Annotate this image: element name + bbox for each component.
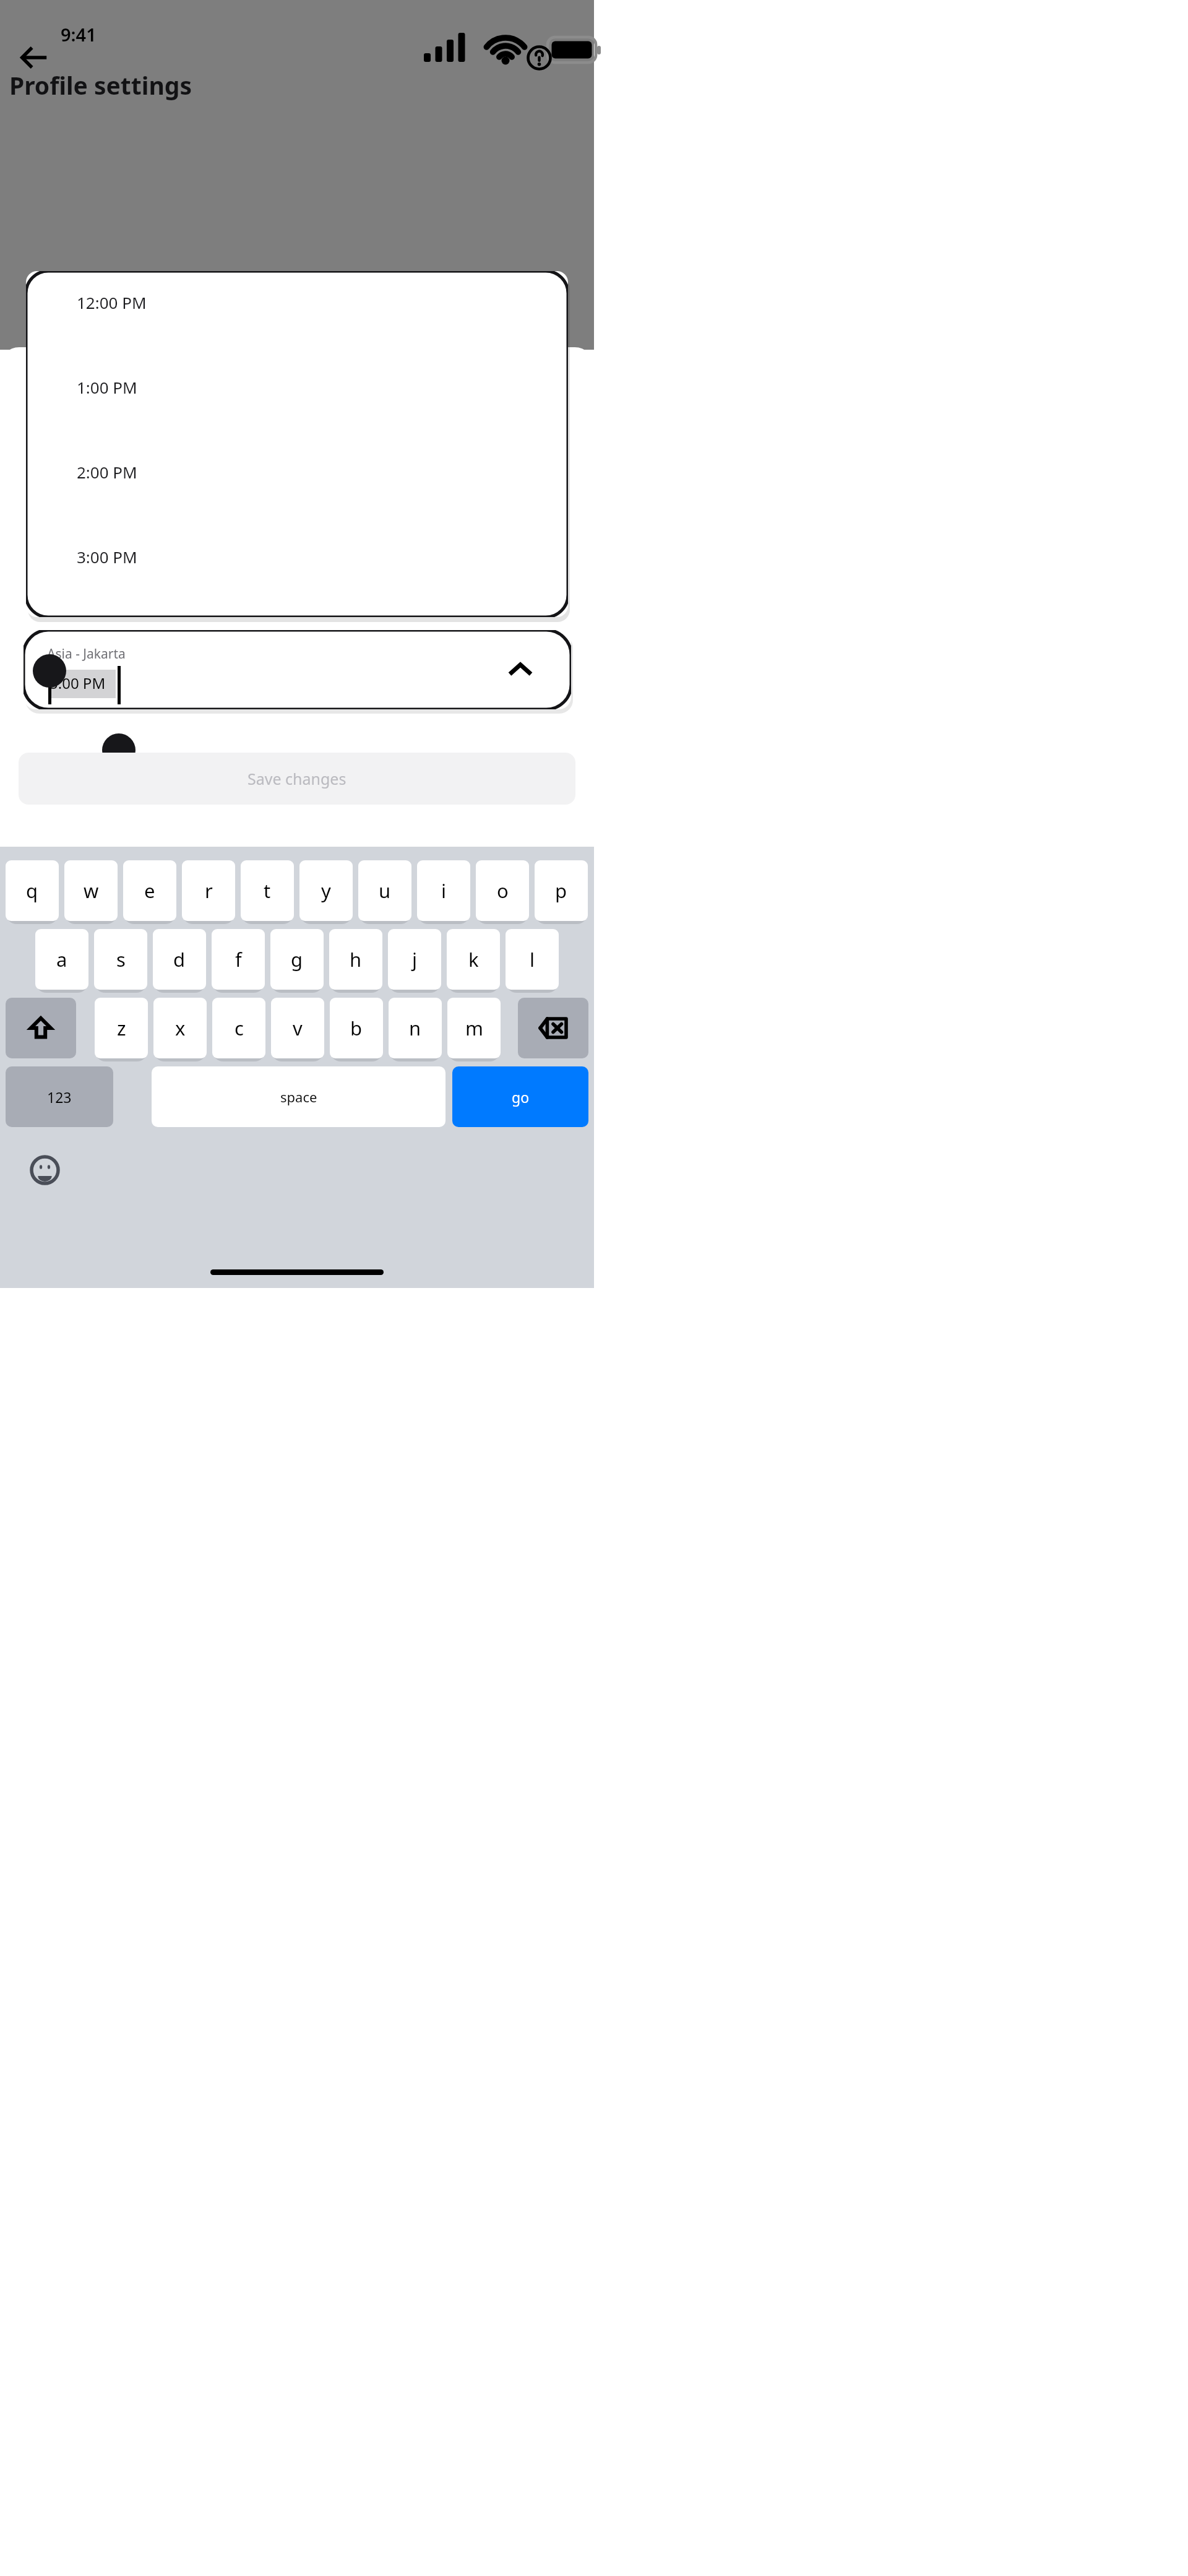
staticText: 3:00 PM	[77, 546, 137, 568]
button[interactable]: v	[271, 998, 324, 1058]
button[interactable]: d	[153, 929, 206, 990]
button[interactable]: b	[330, 998, 383, 1058]
staticText: w	[84, 878, 99, 904]
staticText: Profile settings	[9, 69, 192, 102]
staticText: r	[205, 878, 213, 904]
button[interactable]: o	[476, 860, 529, 921]
staticText: g	[291, 946, 303, 972]
button[interactable]: 123	[6, 1066, 113, 1127]
staticText: 12:00 PM	[77, 292, 147, 313]
staticText: 9:41	[61, 22, 97, 46]
staticText: t	[264, 878, 271, 904]
button[interactable]: l	[506, 929, 559, 990]
staticText: z	[117, 1015, 126, 1041]
staticText: e	[144, 878, 155, 904]
staticText: v	[293, 1015, 303, 1041]
button[interactable]: j	[388, 929, 441, 990]
button[interactable]: q	[6, 860, 59, 921]
button[interactable]: 12:00 PM	[26, 285, 568, 370]
staticText: p	[555, 878, 567, 904]
staticText: m	[465, 1015, 483, 1041]
staticText: 2:00 PM	[77, 461, 137, 483]
staticText: a	[56, 946, 67, 972]
button[interactable]: Save changes	[19, 753, 575, 805]
button[interactable]: Backspace	[518, 998, 588, 1058]
staticText: b	[350, 1015, 363, 1041]
staticText: c	[235, 1015, 244, 1041]
button[interactable]: y	[299, 860, 353, 921]
button[interactable]: x	[153, 998, 207, 1058]
button[interactable]: Emoji	[25, 1150, 65, 1190]
button[interactable]: r	[182, 860, 235, 921]
staticText: l	[530, 946, 535, 972]
staticText: Asia - Jakarta	[47, 645, 126, 663]
button[interactable]: p	[535, 860, 588, 921]
staticText: q	[26, 878, 38, 904]
staticText: o	[497, 878, 509, 904]
button[interactable]: e	[123, 860, 176, 921]
staticText: f	[235, 946, 242, 972]
button[interactable]: u	[358, 860, 411, 921]
staticText: u	[379, 878, 391, 904]
staticText: 5:00 PM	[49, 673, 106, 693]
button[interactable]: m	[447, 998, 501, 1058]
staticText: 1:00 PM	[77, 376, 137, 398]
button[interactable]: z	[95, 998, 148, 1058]
staticText: i	[441, 878, 446, 904]
staticText: x	[175, 1015, 186, 1041]
button[interactable]: Shift	[6, 998, 76, 1058]
staticText: k	[468, 946, 479, 972]
button[interactable]: a	[35, 929, 88, 990]
button[interactable]: g	[270, 929, 324, 990]
staticText: Save changes	[247, 768, 346, 789]
button[interactable]: space	[152, 1066, 445, 1127]
staticText: n	[409, 1015, 421, 1041]
button[interactable]: k	[447, 929, 500, 990]
button[interactable]: n	[389, 998, 442, 1058]
staticText: j	[412, 946, 417, 972]
button[interactable]: go	[452, 1066, 588, 1127]
button[interactable]: i	[417, 860, 470, 921]
button[interactable]: w	[64, 860, 118, 921]
staticText: space	[280, 1087, 317, 1106]
button[interactable]: s	[94, 929, 147, 990]
button[interactable]: Back	[14, 37, 54, 78]
staticText: go	[512, 1087, 530, 1107]
staticText: 123	[47, 1087, 72, 1107]
button[interactable]: t	[241, 860, 294, 921]
staticText: s	[116, 946, 126, 972]
button[interactable]: f	[212, 929, 265, 990]
button[interactable]: 2:00 PM	[26, 455, 568, 540]
button[interactable]: c	[212, 998, 265, 1058]
button[interactable]: Help	[519, 37, 559, 78]
button[interactable]: h	[329, 929, 382, 990]
staticText: y	[321, 878, 331, 904]
button[interactable]: Asia - Jakarta	[24, 630, 571, 709]
button[interactable]: 1:00 PM	[26, 370, 568, 455]
staticText: h	[350, 946, 362, 972]
staticText: d	[173, 946, 186, 972]
button[interactable]: 3:00 PM	[26, 540, 568, 617]
